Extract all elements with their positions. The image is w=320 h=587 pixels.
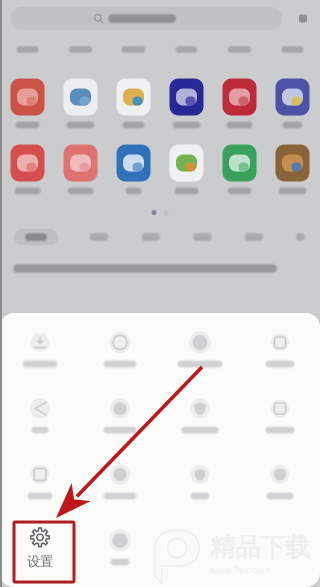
button[interactable] <box>0 327 80 373</box>
button[interactable] <box>80 459 160 505</box>
button[interactable] <box>0 393 80 439</box>
button[interactable] <box>240 327 320 373</box>
button[interactable] <box>107 144 160 196</box>
button[interactable] <box>160 459 240 505</box>
button[interactable]: 设置 <box>0 525 80 571</box>
button[interactable] <box>240 459 320 505</box>
button[interactable] <box>213 144 266 196</box>
staticText: www.9pc.com <box>210 563 271 575</box>
button[interactable] <box>1 144 54 196</box>
button[interactable] <box>80 393 160 439</box>
button[interactable] <box>266 144 319 196</box>
button[interactable] <box>240 393 320 439</box>
button[interactable] <box>107 78 160 130</box>
button[interactable] <box>80 525 160 571</box>
button[interactable] <box>1 78 54 130</box>
button[interactable] <box>266 78 319 130</box>
staticText: 设置 <box>27 553 53 570</box>
button[interactable] <box>213 78 266 130</box>
button[interactable] <box>0 459 80 505</box>
button[interactable]: Scan <box>291 6 315 30</box>
button[interactable] <box>54 144 107 196</box>
button[interactable] <box>54 78 107 130</box>
button[interactable] <box>160 393 240 439</box>
button[interactable] <box>160 327 240 373</box>
button[interactable] <box>160 144 213 196</box>
staticText: 精品下载 <box>210 532 310 563</box>
button[interactable] <box>160 78 213 130</box>
button[interactable] <box>80 327 160 373</box>
